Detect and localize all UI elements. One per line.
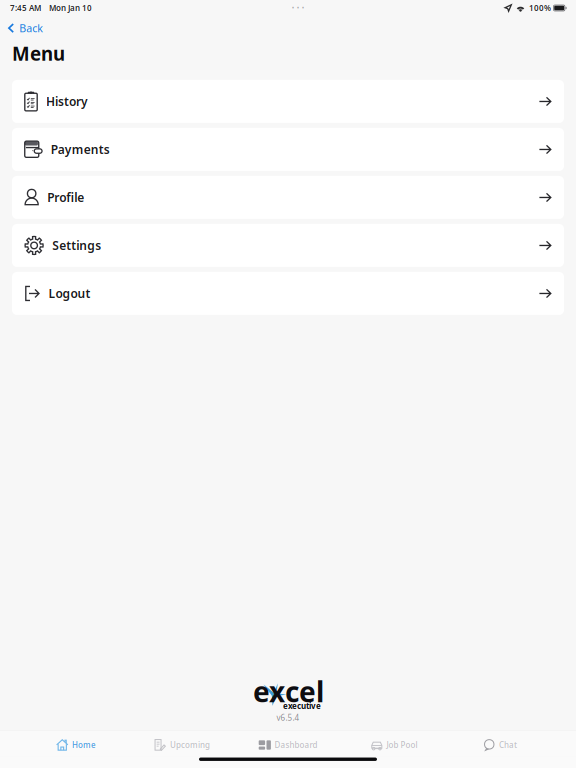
staticText: History xyxy=(46,93,88,109)
staticText: Logout xyxy=(49,285,91,301)
button[interactable]: Payments xyxy=(12,128,564,171)
button[interactable]: History xyxy=(12,80,564,123)
staticText: • • • xyxy=(292,4,305,12)
staticText: 100% xyxy=(529,3,551,13)
staticText: Dashboard xyxy=(274,740,317,750)
staticText: Upcoming xyxy=(170,740,210,750)
button[interactable]: Profile xyxy=(12,176,564,219)
staticText: v6.5.4 xyxy=(276,712,299,723)
staticText: Menu xyxy=(12,41,65,66)
staticText: executive xyxy=(283,701,321,711)
staticText: excel xyxy=(253,673,324,710)
staticText: Chat xyxy=(499,740,517,750)
button[interactable]: Settings xyxy=(12,224,564,267)
staticText: Job Pool xyxy=(386,740,417,750)
staticText: Payments xyxy=(51,141,110,157)
button[interactable]: Chat xyxy=(447,729,553,757)
staticText: 7:45 AM xyxy=(10,3,41,13)
button[interactable]: Upcoming xyxy=(129,729,235,757)
button[interactable]: Job Pool xyxy=(341,729,447,757)
button[interactable]: Logout xyxy=(12,272,564,315)
staticText: Back xyxy=(19,21,43,35)
button[interactable]: Home xyxy=(23,729,129,757)
staticText: Mon Jan 10 xyxy=(49,3,92,13)
staticText: Profile xyxy=(47,189,84,205)
button[interactable]: Back xyxy=(0,17,53,39)
button[interactable]: Dashboard xyxy=(235,729,341,757)
staticText: Settings xyxy=(52,237,101,253)
staticText: Home xyxy=(72,740,96,750)
